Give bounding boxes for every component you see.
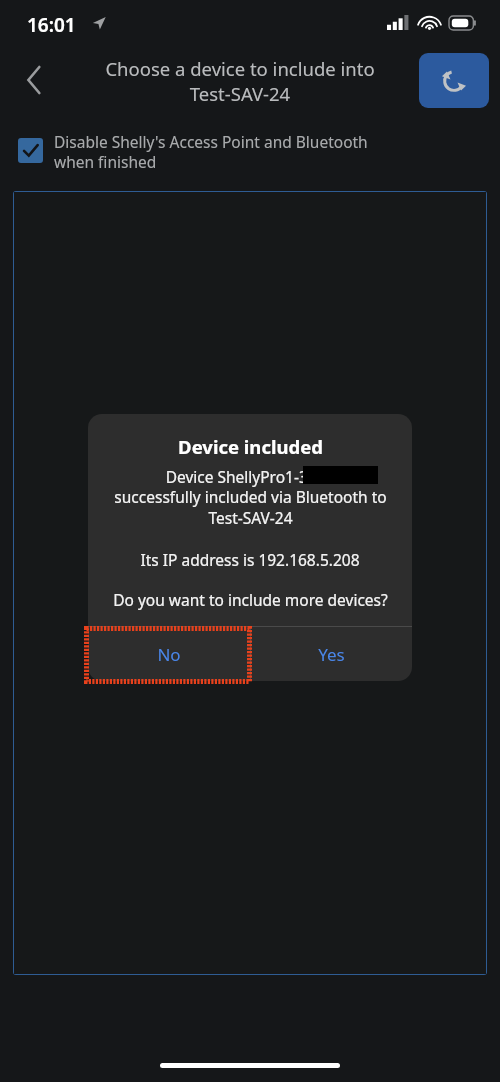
staticText: No: [157, 643, 181, 666]
staticText: Yes: [318, 643, 345, 666]
staticText: Do you want to include more devices?: [113, 589, 388, 610]
staticText: 16:01: [27, 12, 76, 38]
staticText: Disable Shelly's Access Point and Blueto…: [54, 131, 368, 173]
button[interactable]: Disable Shelly's Access Point and Blueto…: [18, 126, 458, 178]
button[interactable]: No: [88, 627, 250, 681]
button[interactable]: Back: [12, 58, 56, 102]
staticText: Device ShellyPro1-30C6 successfully incl…: [114, 466, 387, 529]
staticText: Choose a device to include into Test-SAV…: [105, 56, 375, 107]
staticText: Its IP address is 192.168.5.208: [140, 549, 360, 570]
button[interactable]: Yes: [251, 627, 412, 681]
staticText: Device included: [178, 434, 323, 459]
button[interactable]: Refresh: [419, 53, 489, 108]
